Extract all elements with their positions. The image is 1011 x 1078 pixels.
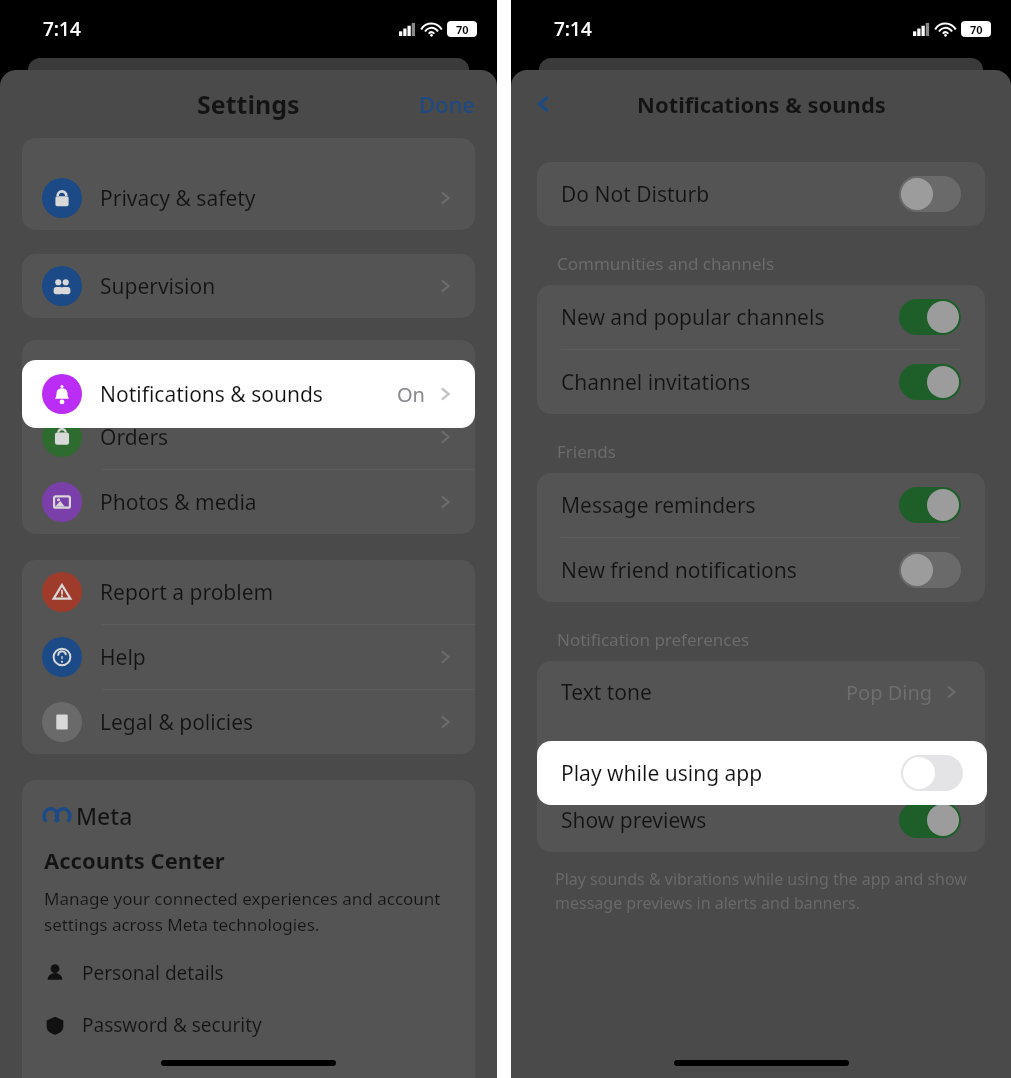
staticText: Help <box>100 643 146 672</box>
staticText: Orders <box>100 423 169 452</box>
staticText: New friend notifications <box>561 556 797 585</box>
button[interactable]: Photos & media <box>22 470 475 534</box>
staticText: Settings <box>197 87 300 121</box>
staticText: Do Not Disturb <box>561 180 710 209</box>
button[interactable]: Back <box>511 85 577 123</box>
staticText: 7:14 <box>554 16 592 42</box>
staticText: Friends <box>557 440 616 463</box>
staticText: 70 <box>456 22 469 37</box>
staticText: Communities and channels <box>557 252 775 275</box>
staticText: Text tone <box>561 678 652 707</box>
button[interactable]: New and popular channels <box>537 285 985 349</box>
button[interactable]: Play while using app <box>537 741 987 805</box>
staticText: Legal & policies <box>100 708 254 737</box>
staticText: Notifications & sounds <box>637 89 886 119</box>
button[interactable]: Do Not Disturb <box>537 162 985 226</box>
button[interactable]: Channel invitations <box>537 350 985 414</box>
staticText: Report a problem <box>100 578 274 607</box>
staticText: Password & security <box>82 1012 262 1038</box>
button[interactable]: Message reminders <box>537 473 985 537</box>
staticText: Play sounds & vibrations while using the… <box>555 868 967 914</box>
staticText: Privacy & safety <box>100 184 256 213</box>
staticText: Manage your connected experiences and ac… <box>44 887 457 936</box>
button[interactable]: Orders <box>22 405 475 469</box>
button[interactable]: Personal details <box>44 954 457 992</box>
button[interactable]: Text tone <box>537 661 985 723</box>
staticText: Supervision <box>100 272 216 301</box>
staticText: Personal details <box>82 960 224 986</box>
button[interactable]: Show previews <box>537 788 985 852</box>
button[interactable]: Supervision <box>22 254 475 318</box>
staticText: Accounts Center <box>44 845 225 875</box>
button[interactable]: Notifications & sounds <box>22 360 475 428</box>
staticText: 70 <box>970 22 983 37</box>
staticText: Channel invitations <box>561 368 751 397</box>
button[interactable]: New friend notifications <box>537 538 985 602</box>
staticText: Photos & media <box>100 488 257 517</box>
staticText: Pop Ding <box>846 679 933 706</box>
staticText: Play while using app <box>561 759 763 788</box>
staticText: Notifications & sounds <box>100 380 323 409</box>
button[interactable]: Done <box>397 79 497 129</box>
staticText: Done <box>419 89 475 119</box>
button[interactable]: Privacy & safety <box>22 166 475 230</box>
button[interactable]: Password & security <box>44 1006 457 1044</box>
staticText: Notification preferences <box>557 628 750 651</box>
button[interactable]: Legal & policies <box>22 690 475 754</box>
staticText: Meta <box>76 800 133 831</box>
button[interactable]: Report a problem <box>22 560 475 624</box>
staticText: 7:14 <box>43 16 81 42</box>
button[interactable]: Help <box>22 625 475 689</box>
staticText: On <box>397 381 425 408</box>
staticText: New and popular channels <box>561 303 825 332</box>
staticText: Message reminders <box>561 491 756 520</box>
staticText: Show previews <box>561 806 707 835</box>
